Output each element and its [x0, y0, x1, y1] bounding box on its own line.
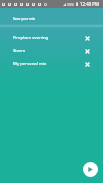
button[interactable]: My personal mix: [0, 56, 103, 69]
staticText: Storm: [13, 47, 81, 53]
staticText: 50%: [67, 2, 75, 7]
button[interactable]: Remove: [81, 57, 93, 69]
staticText: Fireplace evening: [13, 34, 81, 40]
button[interactable]: Storm: [0, 43, 103, 56]
button[interactable]: Fireplace evening: [0, 30, 103, 43]
button[interactable]: Remove: [81, 44, 93, 56]
staticText: My personal mix: [13, 60, 81, 66]
staticText: 12:40 PM: [80, 1, 100, 7]
button[interactable]: Play: [83, 162, 98, 177]
button[interactable]: Remove: [81, 31, 93, 43]
staticText: Save your mix: [13, 16, 36, 20]
